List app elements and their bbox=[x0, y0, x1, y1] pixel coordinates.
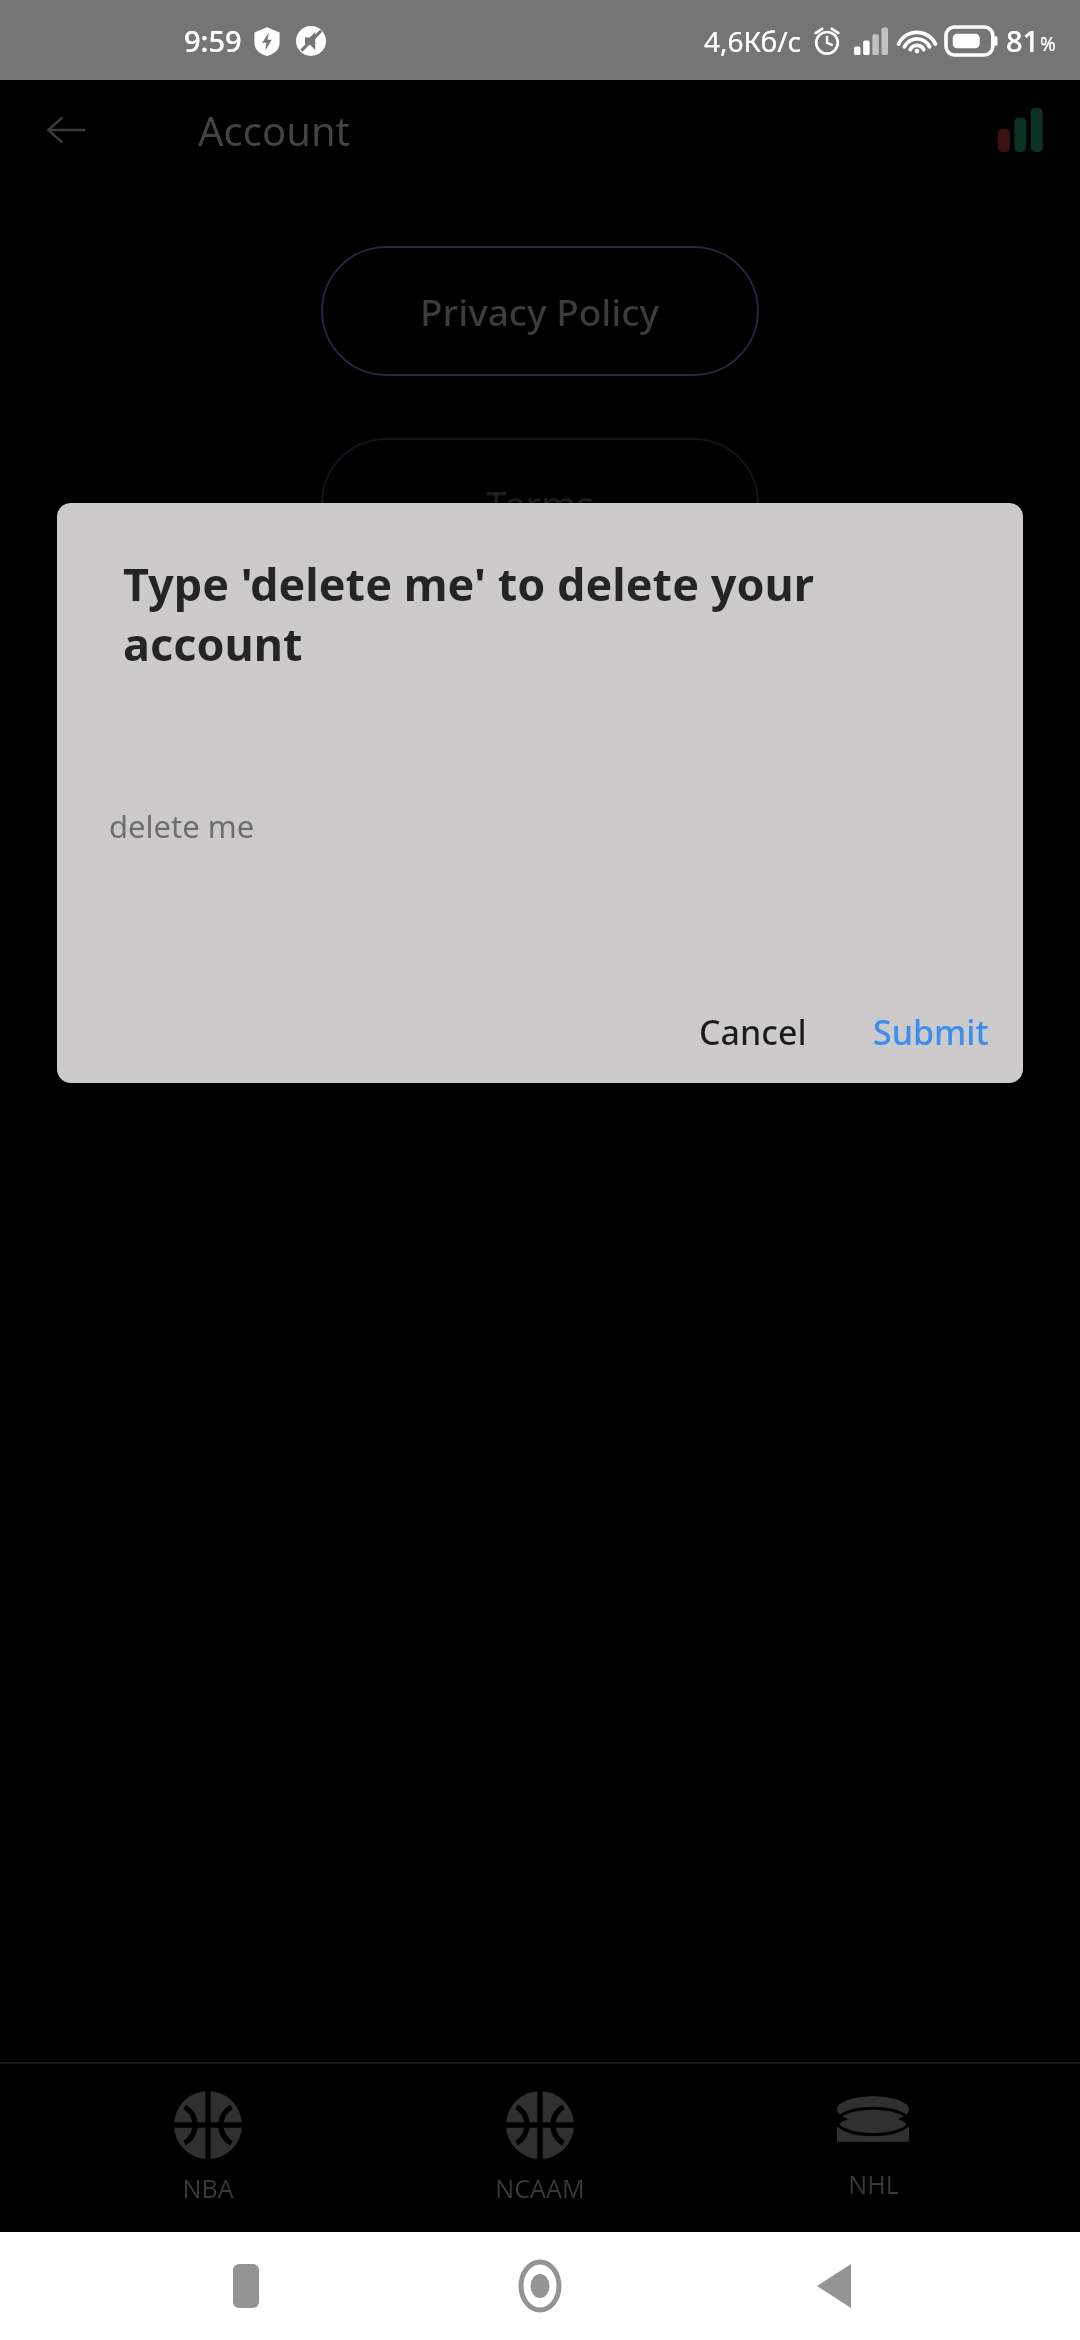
button[interactable]: NCAAM bbox=[415, 2081, 665, 2215]
button[interactable]: NBA bbox=[83, 2081, 333, 2215]
staticText: NBA bbox=[182, 2171, 234, 2205]
staticText: Cancel bbox=[699, 1009, 807, 1055]
button[interactable]: Home bbox=[492, 2238, 588, 2334]
staticText: 4,6Кб/c bbox=[704, 22, 802, 60]
staticText: Privacy Policy bbox=[420, 286, 660, 336]
staticText: Account bbox=[198, 103, 351, 157]
staticText: 81 bbox=[1006, 21, 1040, 60]
button[interactable]: Terms bbox=[321, 438, 759, 568]
button[interactable]: Back bbox=[30, 94, 102, 166]
button[interactable]: Signal strength bbox=[986, 94, 1058, 166]
button[interactable]: Submit bbox=[853, 993, 1009, 1071]
staticText: % bbox=[1040, 31, 1056, 57]
button[interactable]: NHL bbox=[748, 2085, 998, 2211]
button[interactable]: Cancel bbox=[675, 993, 831, 1071]
button[interactable]: Recents bbox=[198, 2238, 294, 2334]
staticText: NHL bbox=[848, 2167, 899, 2201]
staticText: NCAAM bbox=[495, 2171, 585, 2205]
button[interactable]: Privacy Policy bbox=[321, 246, 759, 376]
button[interactable]: Back bbox=[786, 2238, 882, 2334]
staticText: Terms bbox=[486, 478, 595, 528]
staticText: delete me bbox=[109, 805, 255, 847]
staticText: 9:59 bbox=[184, 21, 242, 60]
staticText: Submit bbox=[873, 1009, 989, 1055]
staticText: Type 'delete me' to delete your account bbox=[123, 553, 953, 674]
